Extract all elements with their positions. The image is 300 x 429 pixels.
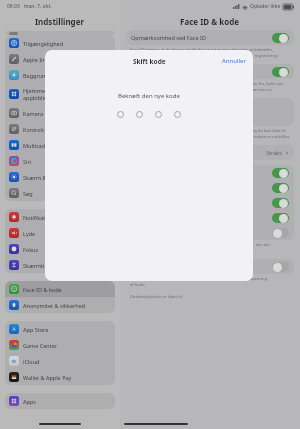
- button[interactable]: Slået til: [272, 183, 289, 193]
- staticText: Hjemkontrol: [131, 199, 272, 206]
- staticText: Bekræft den nye kode: [118, 92, 180, 100]
- button[interactable]: Nulstil Face ID: [126, 98, 294, 112]
- staticText: Indstillinger: [35, 16, 85, 27]
- staticText: Ring til ubesvaret opkald: [131, 214, 272, 221]
- staticText: Face ID & kode: [180, 16, 240, 27]
- button[interactable]: Slået fra: [272, 228, 289, 238]
- staticText: Slet data: [131, 263, 272, 270]
- staticText: Annuller: [222, 57, 246, 65]
- staticText: Skærmtid: [23, 262, 115, 269]
- button[interactable]: Ring til ubesvaret opkald: [126, 210, 294, 225]
- button[interactable]: Hjemkontrol: [126, 195, 294, 210]
- button[interactable]: Stemmekontrol: [126, 165, 294, 180]
- staticText: Kontrolcenter: [23, 126, 115, 133]
- staticText: 09.03 man. 7. okt.: [7, 3, 52, 10]
- staticText: Kræv kode: [131, 149, 266, 156]
- button[interactable]: Slet data: [126, 259, 294, 274]
- staticText: Lydeffekter ved Face ID: [131, 68, 272, 75]
- button[interactable]: Søg: [5, 185, 115, 201]
- button[interactable]: Siri: [5, 153, 115, 169]
- button[interactable]: Slået til: [272, 168, 289, 178]
- button[interactable]: Apple Intellige: [5, 51, 115, 67]
- staticText: Slå Face ID fra: [131, 116, 168, 123]
- button[interactable]: Lydeffekter ved Face ID: [126, 64, 294, 79]
- staticText: Multitasking &: [23, 142, 115, 149]
- staticText: Opmærksomhed ved Face ID: [131, 34, 272, 41]
- staticText: Tilbehør: [131, 229, 272, 236]
- button[interactable]: Kontrolcenter: [5, 121, 115, 137]
- staticText: App Store: [23, 326, 115, 333]
- button[interactable]: Slået til: [272, 67, 289, 77]
- button[interactable]: Face ID & kode: [5, 281, 115, 297]
- staticText: Skift kode: [133, 57, 166, 66]
- staticText: Fokus: [23, 246, 115, 253]
- button[interactable]: Lyde: [5, 225, 115, 241]
- staticText: Hjemmeskærm & appbibliotek: [23, 87, 115, 101]
- staticText: Slet alle data på denne iPad efter 10 mi…: [130, 276, 294, 288]
- button[interactable]: Slået til: [272, 213, 289, 223]
- staticText: iCloud: [23, 358, 115, 365]
- button[interactable]: Slå Face ID fra: [126, 112, 294, 126]
- button[interactable]: iCloud: [5, 353, 115, 369]
- button[interactable]: Skærm & lysstyrke: [5, 169, 115, 185]
- staticText: Kamera: [23, 110, 115, 117]
- button[interactable]: Liveaktiviteter: [126, 180, 294, 195]
- button[interactable]: Skærmtid: [5, 257, 115, 273]
- button[interactable]: Opmærksomhed ved Face ID: [126, 30, 294, 45]
- button[interactable]: Baggrund: [5, 67, 115, 83]
- button[interactable]: Fokus: [5, 241, 115, 257]
- staticText: Lås din iPad op for at tillade, at tilbe…: [130, 242, 294, 254]
- staticText: Søg: [23, 190, 115, 197]
- staticText: Face ID kræver, at du kigger på iPad'en …: [130, 47, 294, 59]
- staticText: Lyde: [23, 230, 115, 237]
- staticText: Wallet & Apple Pay: [23, 374, 115, 381]
- staticText: Game Center: [23, 342, 115, 349]
- button[interactable]: Tilgængelighed: [5, 35, 115, 51]
- staticText: Afspil en lyd ved en vellykket registrer…: [130, 81, 294, 93]
- staticText: Siri: [23, 158, 115, 165]
- button[interactable]: App Store: [5, 321, 115, 337]
- staticText: Notifikationer: [23, 214, 115, 221]
- button[interactable]: Annuller: [215, 53, 253, 69]
- staticText: Anonymitet & sikkerhed: [23, 302, 115, 309]
- staticText: Baggrund: [23, 72, 115, 79]
- staticText: Oplader ikke: [250, 3, 281, 10]
- staticText: Straks: [266, 149, 282, 156]
- staticText: Apple Intellige: [23, 56, 115, 63]
- staticText: Hvis du nulstiller Face ID, slettes de e…: [130, 128, 294, 140]
- staticText: Apps: [23, 398, 115, 405]
- staticText: Skærm & lysstyrke: [23, 174, 115, 181]
- staticText: Face ID & kode: [23, 286, 115, 293]
- staticText: Tilgængelighed: [23, 40, 115, 47]
- button[interactable]: Multitasking &: [5, 137, 115, 153]
- button[interactable]: Kamera: [5, 105, 115, 121]
- staticText: Liveaktiviteter: [131, 184, 272, 191]
- button[interactable]: Notifikationer: [5, 209, 115, 225]
- button[interactable]: Apps: [5, 393, 115, 409]
- button[interactable]: Slået til: [272, 33, 289, 43]
- staticText: Stemmekontrol: [131, 169, 272, 176]
- button[interactable]: Kræv kode: [126, 145, 294, 160]
- button[interactable]: Slået fra: [272, 262, 289, 272]
- button[interactable]: Game Center: [5, 337, 115, 353]
- button[interactable]: Hjemmeskærm & appbibliotek: [5, 83, 115, 105]
- staticText: Databeskyttelse er slået til.: [130, 294, 294, 300]
- button[interactable]: Slået til: [272, 198, 289, 208]
- button[interactable]: Anonymitet & sikkerhed: [5, 297, 115, 313]
- button[interactable]: Tilbehør: [126, 225, 294, 240]
- button[interactable]: Wallet & Apple Pay: [5, 369, 115, 385]
